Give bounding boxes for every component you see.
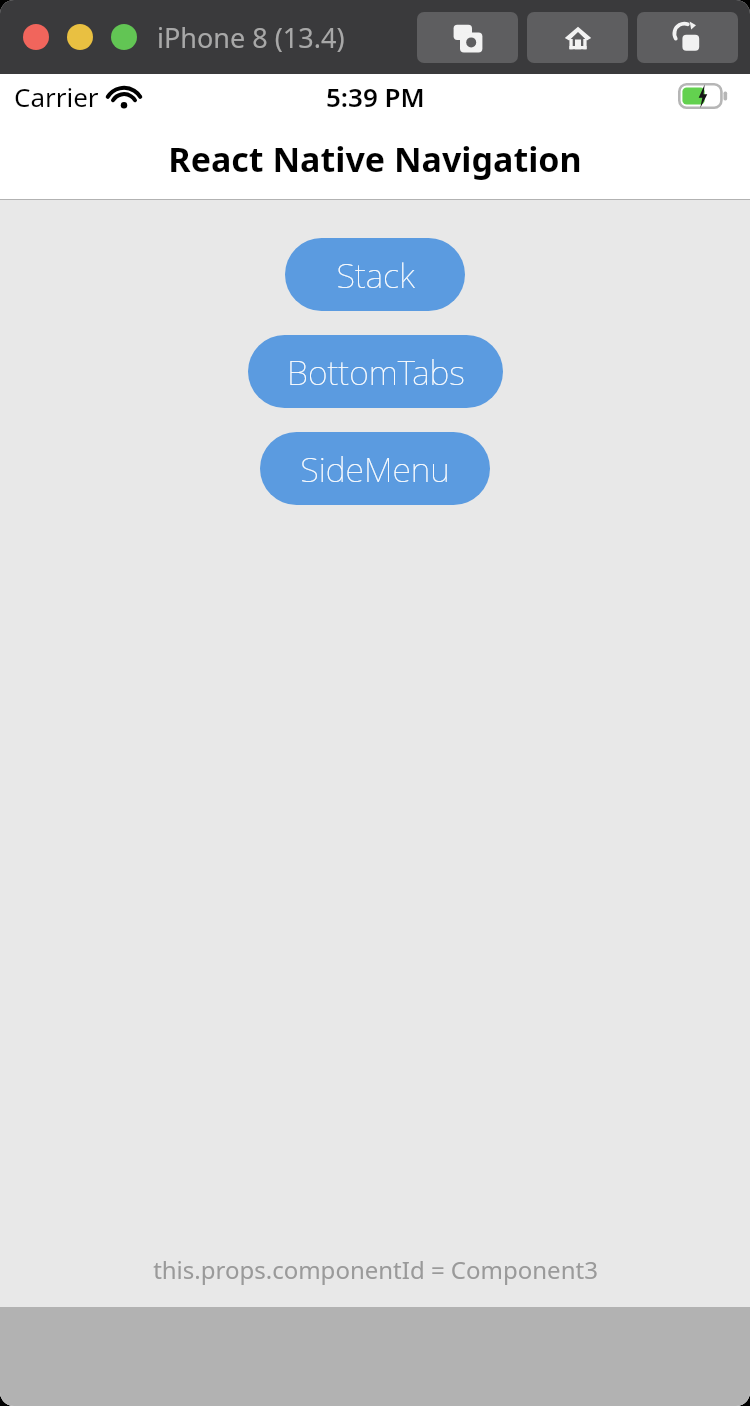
staticText: Stack	[336, 252, 415, 298]
button[interactable]: Zoom	[111, 24, 137, 50]
staticText: iPhone 8 (13.4)	[157, 19, 345, 56]
staticText: Carrier	[14, 79, 99, 114]
button[interactable]: Minimize	[67, 24, 93, 50]
button[interactable]: Stack	[285, 238, 465, 311]
staticText: this.props.componentId = Component3	[153, 1253, 598, 1286]
staticText: SideMenu	[300, 446, 450, 492]
staticText: 5:39 PM	[326, 79, 425, 114]
button[interactable]: Home	[527, 12, 628, 63]
button[interactable]: Close	[23, 24, 49, 50]
staticText: BottomTabs	[287, 349, 465, 395]
staticText: React Native Navigation	[168, 136, 582, 182]
button[interactable]: SideMenu	[260, 432, 490, 505]
button[interactable]: BottomTabs	[248, 335, 503, 408]
button[interactable]: Screenshot	[417, 12, 518, 63]
button[interactable]: Rotate	[637, 12, 738, 63]
